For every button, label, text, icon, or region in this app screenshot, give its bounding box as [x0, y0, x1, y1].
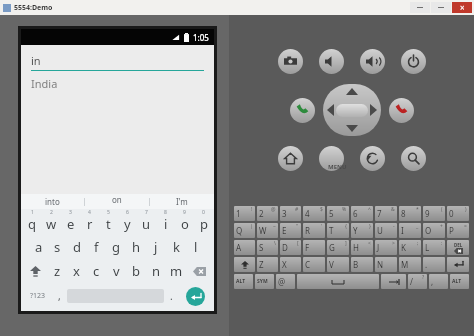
button[interactable]: 2 [257, 206, 278, 221]
button[interactable]: Up [346, 88, 358, 95]
button[interactable]: U [375, 223, 397, 238]
button[interactable]: Shift [23, 259, 48, 283]
button[interactable]: T [327, 223, 349, 238]
button[interactable]: 0 [194, 209, 213, 235]
button[interactable]: Menu [319, 146, 344, 171]
button[interactable]: 7 [137, 209, 156, 235]
button[interactable]: Window button [431, 2, 451, 13]
button[interactable]: Close [452, 2, 472, 13]
button[interactable]: k [166, 235, 186, 259]
button[interactable]: OK [336, 104, 368, 117]
button[interactable]: Enter [447, 257, 469, 272]
button[interactable]: v [106, 259, 126, 283]
button[interactable]: h [126, 235, 146, 259]
button[interactable]: Y [351, 223, 373, 238]
button[interactable]: g [106, 235, 126, 259]
button[interactable]: 0 [447, 206, 469, 221]
button[interactable]: 1 [22, 209, 42, 235]
button[interactable]: Camera [278, 49, 303, 74]
button[interactable]: d [67, 235, 86, 259]
button[interactable]: Backspace [186, 259, 212, 283]
button[interactable]: z [48, 259, 67, 283]
button[interactable]: 2 [42, 209, 61, 235]
button[interactable]: 5 [327, 206, 349, 221]
button[interactable]: Down [346, 125, 358, 132]
button[interactable]: Tab [381, 274, 406, 289]
button[interactable]: D [280, 240, 301, 255]
button[interactable]: F [303, 240, 325, 255]
button[interactable]: n [146, 259, 166, 283]
button[interactable]: Home [278, 146, 303, 171]
button[interactable]: b [126, 259, 146, 283]
button[interactable]: Power [401, 49, 426, 74]
button[interactable]: SYM [255, 274, 274, 289]
button[interactable]: j [146, 235, 166, 259]
button[interactable]: on [85, 194, 149, 209]
button[interactable]: Window button [410, 2, 430, 13]
button[interactable]: W [257, 223, 278, 238]
button[interactable]: Right [370, 104, 377, 116]
button[interactable]: 4 [303, 206, 325, 221]
button[interactable]: 3 [61, 209, 80, 235]
button[interactable]: Space [297, 274, 379, 289]
button[interactable]: l [186, 235, 206, 259]
button[interactable]: Back [360, 146, 385, 171]
button[interactable]: O [423, 223, 445, 238]
button[interactable]: E [280, 223, 301, 238]
button[interactable]: / [408, 274, 427, 289]
button[interactable]: Call [290, 98, 315, 123]
button[interactable]: M [399, 257, 421, 272]
button[interactable]: Search [401, 146, 426, 171]
button[interactable]: V [327, 257, 349, 272]
button[interactable]: B [351, 257, 373, 272]
button[interactable]: Left [327, 104, 334, 116]
button[interactable]: 3 [280, 206, 301, 221]
button[interactable]: G [327, 240, 349, 255]
button[interactable]: f [86, 235, 106, 259]
button[interactable]: 5 [99, 209, 118, 235]
button[interactable]: @ [276, 274, 295, 289]
button[interactable]: Enter [186, 287, 205, 306]
button[interactable]: R [303, 223, 325, 238]
button[interactable]: x [67, 259, 86, 283]
button[interactable]: c [86, 259, 106, 283]
button[interactable]: Z [257, 257, 278, 272]
button[interactable]: P [447, 223, 469, 238]
button[interactable]: K [399, 240, 421, 255]
button[interactable]: 7 [375, 206, 397, 221]
button[interactable]: a [29, 235, 48, 259]
button[interactable]: I [399, 223, 421, 238]
button[interactable]: 9 [175, 209, 194, 235]
button[interactable]: , [52, 283, 67, 309]
button[interactable]: 4 [80, 209, 99, 235]
button[interactable]: N [375, 257, 397, 272]
button[interactable]: 8 [399, 206, 421, 221]
button[interactable]: ALT [450, 274, 469, 289]
button[interactable]: 6 [351, 206, 373, 221]
button[interactable]: 9 [423, 206, 445, 221]
button[interactable]: H [351, 240, 373, 255]
button[interactable]: Q [234, 223, 255, 238]
button[interactable]: Delete [447, 240, 469, 255]
button[interactable]: 1 [234, 206, 255, 221]
button[interactable]: S [257, 240, 278, 255]
button[interactable]: Volume up [360, 49, 385, 74]
button[interactable]: C [303, 257, 325, 272]
button[interactable]: I'm [150, 194, 214, 209]
button[interactable]: . [164, 283, 179, 309]
button[interactable]: ?123 [24, 283, 52, 309]
button[interactable]: , [429, 274, 448, 289]
button[interactable]: s [48, 235, 67, 259]
button[interactable]: A [234, 240, 255, 255]
button[interactable]: 6 [118, 209, 137, 235]
button[interactable]: 8 [156, 209, 175, 235]
button[interactable]: m [166, 259, 186, 283]
button[interactable]: Volume down [319, 49, 344, 74]
button[interactable]: ALT [234, 274, 253, 289]
button[interactable]: X [280, 257, 301, 272]
button[interactable]: L [423, 240, 445, 255]
button[interactable]: . [423, 257, 445, 272]
button[interactable]: into [21, 194, 84, 209]
button[interactable]: J [375, 240, 397, 255]
